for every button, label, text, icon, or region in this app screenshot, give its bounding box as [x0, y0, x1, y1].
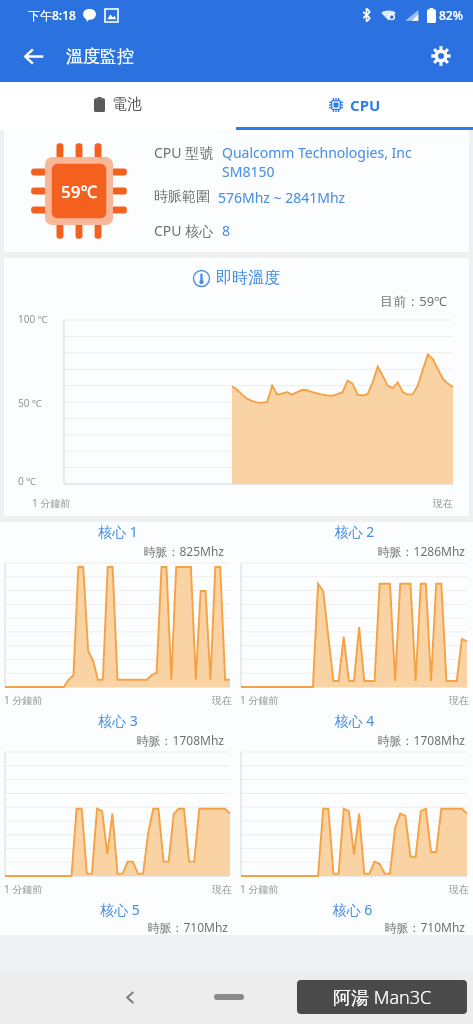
button[interactable]: Home: [199, 980, 259, 1014]
staticText: 576Mhz ~ 2841Mhz: [218, 188, 346, 207]
staticText: 現在: [433, 497, 453, 510]
staticText: 1 分鐘前: [240, 882, 279, 896]
button[interactable]: Back: [110, 977, 150, 1017]
staticText: 50 ℃: [18, 396, 42, 410]
button[interactable]: 核心 1: [4, 522, 232, 707]
button[interactable]: 核心 2: [240, 522, 469, 707]
staticText: 時脈：1708Mhz: [240, 732, 465, 748]
staticText: 阿湯 Man3C: [333, 985, 432, 1010]
staticText: CPU: [350, 95, 381, 115]
staticText: CPU 核心: [154, 221, 214, 240]
staticText: 核心 5: [4, 900, 236, 919]
staticText: 電池: [112, 95, 142, 114]
staticText: 核心 3: [4, 711, 232, 730]
staticText: 82%: [439, 7, 463, 23]
staticText: 1 分鐘前: [32, 496, 71, 510]
staticText: 即時溫度: [216, 268, 280, 288]
staticText: 目前：59℃: [4, 292, 447, 310]
staticText: 現在: [212, 694, 232, 707]
staticText: 時脈範圍: [154, 188, 210, 206]
staticText: 100 ℃: [18, 312, 48, 326]
staticText: CPU 型號: [154, 143, 214, 162]
button[interactable]: CPU: [236, 82, 473, 127]
button[interactable]: Back: [12, 34, 56, 78]
staticText: 核心 6: [236, 900, 469, 919]
staticText: 溫度監控: [66, 46, 134, 67]
staticText: 時脈：1708Mhz: [4, 732, 224, 748]
button[interactable]: Settings: [419, 34, 463, 78]
staticText: Qualcomm Technologies, Inc SM8150: [222, 143, 461, 181]
staticText: 1 分鐘前: [240, 693, 279, 707]
staticText: 1 分鐘前: [4, 882, 43, 896]
staticText: 0 ℃: [18, 474, 37, 488]
staticText: 8: [222, 221, 231, 240]
staticText: 59℃: [61, 180, 98, 203]
staticText: 核心 1: [4, 522, 232, 541]
staticText: 時脈：710Mhz: [4, 919, 228, 935]
button[interactable]: 核心 4: [240, 711, 469, 896]
staticText: 時脈：710Mhz: [236, 919, 465, 935]
staticText: 下午8:18: [28, 7, 76, 23]
staticText: 時脈：825Mhz: [4, 543, 224, 559]
button[interactable]: 電池: [0, 82, 236, 127]
staticText: 現在: [212, 883, 232, 896]
staticText: 時脈：1286Mhz: [240, 543, 465, 559]
button[interactable]: 核心 3: [4, 711, 232, 896]
staticText: 1 分鐘前: [4, 693, 43, 707]
staticText: 現在: [449, 694, 469, 707]
staticText: 核心 4: [240, 711, 469, 730]
staticText: 核心 2: [240, 522, 469, 541]
staticText: 現在: [449, 883, 469, 896]
